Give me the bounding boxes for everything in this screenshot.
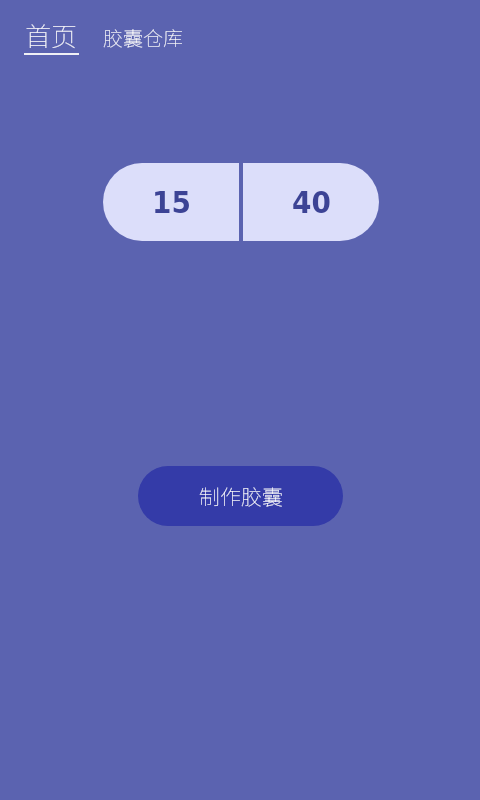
staticText: 胶囊仓库: [103, 23, 183, 52]
button[interactable]: 15: [103, 163, 239, 241]
button[interactable]: 首页: [22, 11, 81, 57]
staticText: 制作胶囊: [199, 481, 283, 511]
button[interactable]: 胶囊仓库: [99, 19, 187, 56]
button[interactable]: 制作胶囊: [138, 466, 343, 526]
staticText: 40: [292, 184, 331, 220]
staticText: 首页: [25, 16, 78, 54]
button[interactable]: 40: [243, 163, 379, 241]
staticText: 15: [152, 184, 191, 220]
